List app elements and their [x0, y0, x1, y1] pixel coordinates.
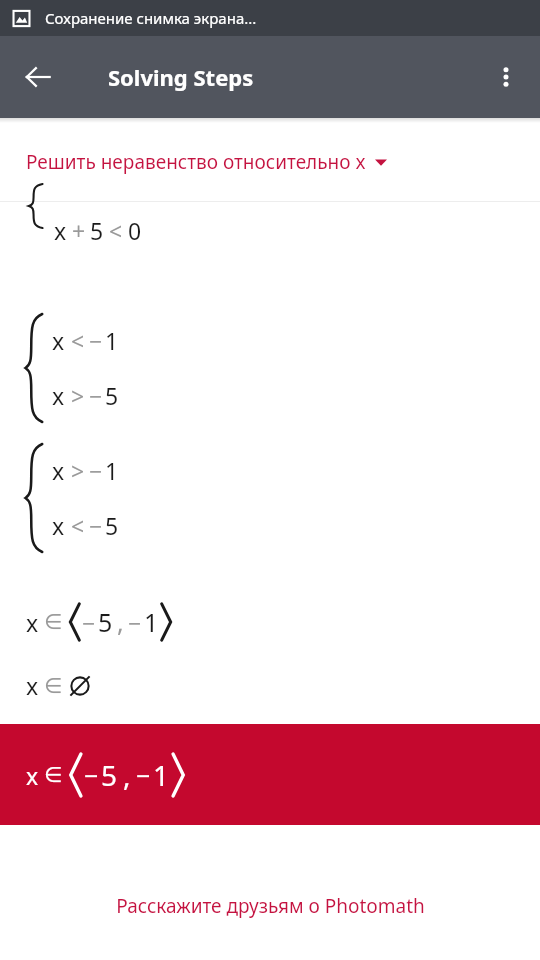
staticText: Расскажите друзьям о Photomath — [116, 893, 425, 919]
staticText: x — [52, 380, 65, 411]
staticText: − — [89, 455, 103, 486]
button[interactable]: More options — [480, 51, 532, 103]
staticText: − — [136, 758, 151, 792]
staticText: , — [117, 605, 124, 639]
staticText: x — [26, 607, 39, 638]
staticText: ∈ — [44, 674, 63, 698]
staticText: , — [123, 756, 131, 794]
staticText: − — [89, 325, 103, 356]
staticText: < — [71, 325, 85, 356]
staticText: x — [54, 215, 67, 246]
staticText: Сохранение снимка экрана... — [45, 8, 257, 28]
staticText: > — [71, 455, 85, 486]
staticText: 1 — [144, 605, 159, 639]
staticText: Solving Steps — [108, 62, 254, 92]
staticText: x — [52, 325, 65, 356]
staticText: < — [109, 215, 123, 246]
staticText: − — [89, 510, 103, 541]
staticText: + — [72, 215, 86, 246]
staticText: − — [89, 380, 103, 411]
staticText: < — [71, 510, 85, 541]
staticText: 5 — [105, 380, 119, 411]
staticText: 1 — [105, 455, 119, 486]
staticText: x — [26, 760, 39, 791]
staticText: ∈ — [44, 610, 63, 634]
staticText: 5 — [105, 510, 119, 541]
button[interactable]: x — [0, 724, 540, 825]
button[interactable]: Back — [10, 49, 66, 105]
staticText: − — [82, 607, 96, 638]
staticText: > — [71, 380, 85, 411]
button[interactable]: Решить неравенство относительно x — [0, 123, 540, 201]
staticText: 5 — [90, 215, 104, 246]
staticText: x — [26, 670, 39, 701]
staticText: ∈ — [44, 763, 63, 787]
staticText: − — [128, 607, 142, 638]
staticText: 5 — [98, 605, 113, 639]
staticText: 0 — [128, 215, 142, 246]
staticText: x — [52, 455, 65, 486]
button[interactable]: Расскажите друзьям о Photomath — [96, 883, 445, 929]
staticText: 1 — [153, 756, 170, 794]
staticText: Решить неравенство относительно x — [26, 149, 366, 175]
staticText: 5 — [101, 756, 118, 794]
staticText: x — [52, 510, 65, 541]
staticText: 1 — [105, 325, 119, 356]
staticText: − — [84, 758, 99, 792]
